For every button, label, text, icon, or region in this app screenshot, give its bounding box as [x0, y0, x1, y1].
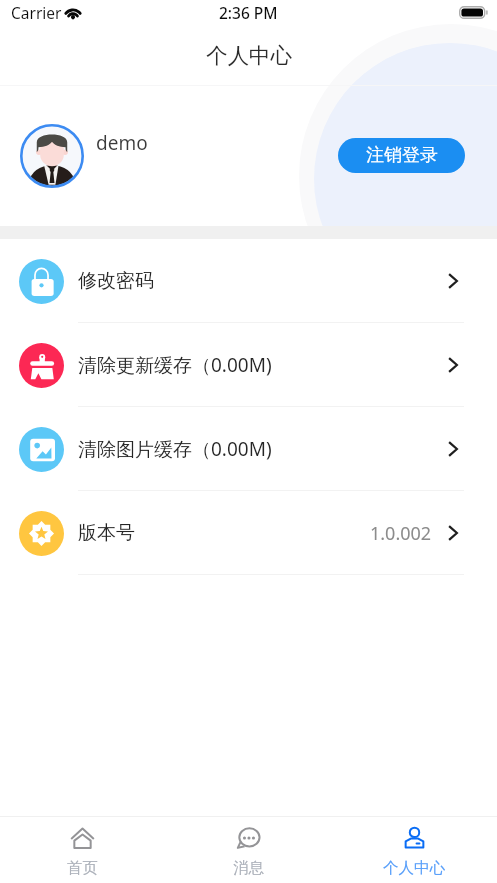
- staticText: 注销登录: [366, 144, 438, 167]
- button[interactable]: 消息: [165, 817, 331, 883]
- button[interactable]: 清除更新缓存（0.00M): [0, 323, 497, 407]
- button[interactable]: 修改密码: [0, 239, 497, 323]
- staticText: Carrier: [11, 2, 62, 23]
- button[interactable]: 版本号: [0, 491, 497, 575]
- other: User avatar: [20, 124, 84, 188]
- staticText: 个人中心: [206, 42, 292, 69]
- staticText: 版本号: [78, 521, 135, 545]
- staticText: 清除图片缓存（0.00M): [78, 436, 272, 462]
- staticText: 清除更新缓存（0.00M): [78, 352, 272, 378]
- staticText: 修改密码: [78, 269, 154, 293]
- staticText: demo: [96, 130, 148, 156]
- button[interactable]: 首页: [0, 817, 165, 883]
- button[interactable]: 注销登录: [338, 138, 465, 173]
- staticText: 首页: [67, 858, 98, 878]
- button[interactable]: 清除图片缓存（0.00M): [0, 407, 497, 491]
- staticText: 消息: [233, 858, 264, 878]
- staticText: 2:36 PM: [219, 2, 278, 23]
- button[interactable]: 个人中心: [331, 817, 497, 883]
- staticText: 1.0.002: [370, 521, 432, 546]
- staticText: 个人中心: [383, 858, 445, 878]
